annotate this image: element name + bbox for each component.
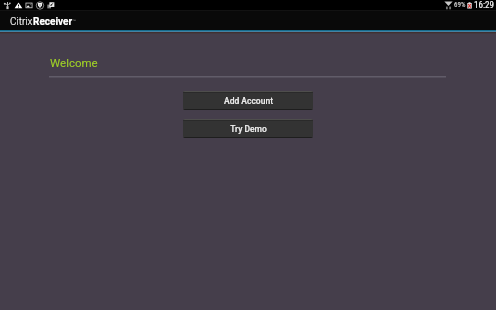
button[interactable]: Try Demo: [183, 119, 313, 138]
staticText: Citrix: [10, 16, 33, 28]
staticText: Try Demo: [230, 124, 267, 134]
staticText: Receiver: [33, 16, 73, 28]
staticText: ™: [73, 18, 77, 24]
staticText: 69%: [454, 1, 466, 9]
staticText: 16:29: [474, 0, 494, 10]
staticText: Add Account: [224, 96, 273, 106]
button[interactable]: Add Account: [183, 91, 313, 110]
staticText: Welcome: [50, 56, 98, 69]
